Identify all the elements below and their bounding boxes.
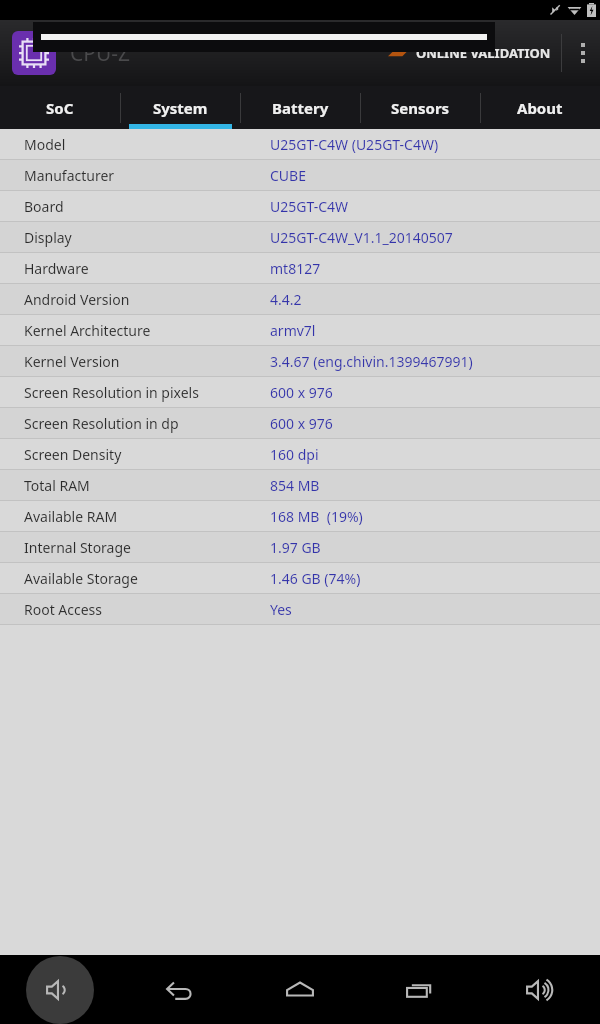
staticText: System [153,98,208,118]
staticText: ONLINE VALIDATION [416,44,551,62]
button[interactable]: Home [240,955,360,1024]
button[interactable]: Recent apps [360,955,480,1024]
staticText: Total RAM [24,476,270,495]
button[interactable]: Kernel Architecture [0,315,600,346]
staticText: Root Access [24,600,270,619]
button[interactable]: About [480,86,600,129]
staticText: mt8127 [270,259,321,278]
button[interactable]: Internal Storage [0,532,600,563]
button[interactable]: Display [0,222,600,253]
staticText: Kernel Architecture [24,321,270,340]
staticText: CPU-Z [70,39,131,68]
button[interactable]: Root Access [0,594,600,625]
button[interactable]: Screen Density [0,439,600,470]
button[interactable]: Screen Resolution in pixels [0,377,600,408]
button[interactable]: SoC [0,86,120,129]
staticText: 4.4.2 [270,290,302,309]
staticText: Kernel Version [24,352,270,371]
staticText: 600 x 976 [270,383,333,402]
staticText: U25GT-C4W_V1.1_20140507 [270,228,453,247]
staticText: Model [24,135,270,154]
staticText: 854 MB [270,476,320,495]
button[interactable]: Manufacturer [0,160,600,191]
button[interactable]: Back [120,955,240,1024]
staticText: About [517,98,563,118]
button[interactable]: Screen Resolution in dp [0,408,600,439]
staticText: 600 x 976 [270,414,333,433]
staticText: Battery [272,98,329,118]
staticText: Manufacturer [24,166,270,185]
staticText: Android Version [24,290,270,309]
staticText: 160 dpi [270,445,319,464]
button[interactable]: More options [566,20,600,86]
staticText: Board [24,197,270,216]
button[interactable]: Board [0,191,600,222]
button[interactable]: Battery [240,86,360,129]
staticText: Sensors [391,98,450,118]
button[interactable]: Hardware [0,253,600,284]
button[interactable]: Volume up [480,955,600,1024]
staticText: Hardware [24,259,270,278]
staticText: U25GT-C4W (U25GT-C4W) [270,135,439,154]
button[interactable]: Sensors [360,86,480,129]
button[interactable]: Kernel Version [0,346,600,377]
button[interactable]: Android Version [0,284,600,315]
staticText: Available RAM [24,507,270,526]
button[interactable]: Available Storage [0,563,600,594]
staticText: SoC [46,98,74,118]
staticText: Screen Resolution in pixels [24,383,270,402]
staticText: Available Storage [24,569,270,588]
staticText: 168 MB (19%) [270,507,363,526]
staticText: Internal Storage [24,538,270,557]
staticText: armv7l [270,321,316,340]
button[interactable]: Total RAM [0,470,600,501]
staticText: Display [24,228,270,247]
staticText: CUBE [270,166,306,185]
staticText: Screen Resolution in dp [24,414,270,433]
staticText: 1.97 GB [270,538,321,557]
button[interactable]: System [120,86,240,129]
staticText: Screen Density [24,445,270,464]
staticText: U25GT-C4W [270,197,349,216]
button[interactable]: CPU-Z [12,31,56,75]
button[interactable]: Available RAM [0,501,600,532]
staticText: Yes [270,600,292,619]
staticText: 3.4.67 (eng.chivin.1399467991) [270,352,473,371]
staticText: 1.46 GB (74%) [270,569,361,588]
button[interactable]: Model [0,129,600,160]
button[interactable]: Volume down [0,955,120,1024]
button[interactable]: ONLINE VALIDATION [382,20,557,86]
